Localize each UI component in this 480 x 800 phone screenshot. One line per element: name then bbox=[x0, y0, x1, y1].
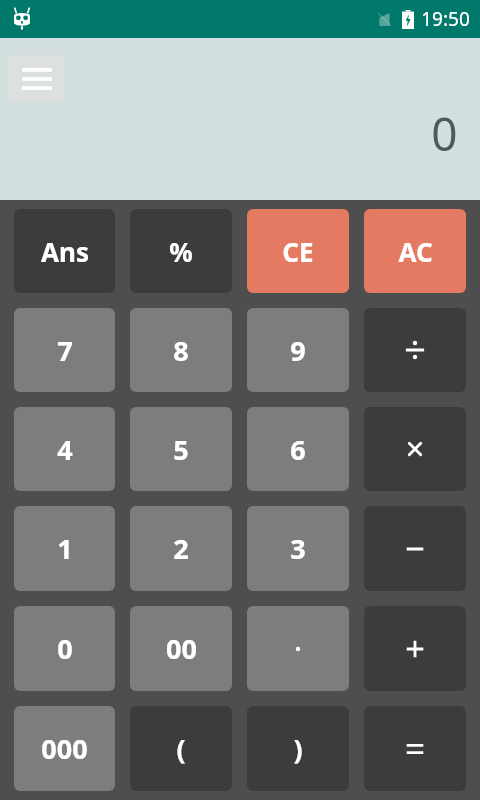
button[interactable]: 6 bbox=[247, 407, 349, 491]
button[interactable]: 0 bbox=[14, 606, 115, 691]
staticText: 0 bbox=[431, 102, 458, 165]
button[interactable]: 3 bbox=[247, 506, 349, 591]
staticText: Ans bbox=[41, 234, 89, 269]
staticText: CE bbox=[282, 234, 314, 269]
staticText: ( bbox=[176, 730, 186, 767]
staticText: 0 bbox=[57, 630, 73, 667]
staticText: 3 bbox=[290, 530, 306, 567]
button[interactable]: Add bbox=[364, 606, 466, 691]
button[interactable]: Subtract bbox=[364, 506, 466, 591]
button[interactable]: ( bbox=[130, 706, 232, 791]
staticText: 9 bbox=[290, 332, 306, 369]
button[interactable]: AC bbox=[364, 209, 466, 293]
button[interactable]: 000 bbox=[14, 706, 115, 791]
staticText: ) bbox=[293, 730, 303, 767]
button[interactable]: 8 bbox=[130, 308, 232, 392]
button[interactable]: 7 bbox=[14, 308, 115, 392]
button[interactable]: 2 bbox=[130, 506, 232, 591]
button[interactable]: Ans bbox=[14, 209, 115, 293]
button[interactable]: Multiply bbox=[364, 407, 466, 491]
button[interactable]: 4 bbox=[14, 407, 115, 491]
staticText: 2 bbox=[173, 530, 189, 567]
button[interactable]: Divide bbox=[364, 308, 466, 392]
staticText: 4 bbox=[57, 431, 73, 468]
staticText: 1 bbox=[57, 530, 73, 567]
button[interactable]: Decimal point bbox=[247, 606, 349, 691]
button[interactable]: CE bbox=[247, 209, 349, 293]
staticText: % bbox=[169, 234, 193, 269]
staticText: 7 bbox=[57, 332, 73, 369]
staticText: 00 bbox=[166, 630, 197, 667]
button[interactable]: ) bbox=[247, 706, 349, 791]
button[interactable]: Menu bbox=[8, 55, 65, 102]
button[interactable]: 00 bbox=[130, 606, 232, 691]
staticText: 000 bbox=[41, 730, 88, 767]
button[interactable]: % bbox=[130, 209, 232, 293]
staticText: 19:50 bbox=[421, 6, 470, 32]
staticText: 6 bbox=[290, 431, 306, 468]
button[interactable]: 9 bbox=[247, 308, 349, 392]
button[interactable]: Equals bbox=[364, 706, 466, 791]
staticText: AC bbox=[398, 234, 433, 269]
button[interactable]: 1 bbox=[14, 506, 115, 591]
button[interactable]: 5 bbox=[130, 407, 232, 491]
staticText: 8 bbox=[173, 332, 189, 369]
staticText: 5 bbox=[173, 431, 189, 468]
